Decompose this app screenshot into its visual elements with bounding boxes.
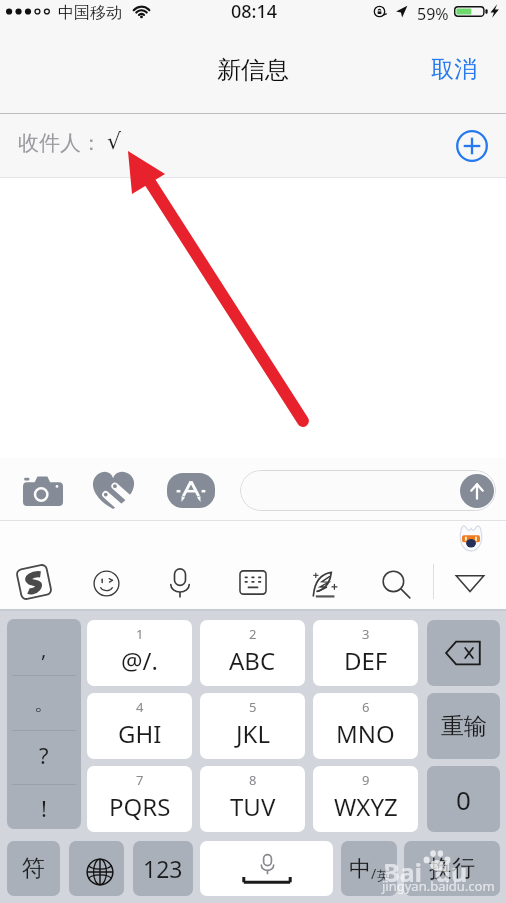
staticText: 2 [249,625,257,643]
staticText: TUV [230,790,276,823]
staticText: 6 [362,698,370,716]
button[interactable]: 0 [427,766,500,832]
staticText: 。 [34,691,54,716]
button[interactable]: Handwriting [309,567,340,599]
staticText: √ [107,129,122,155]
button[interactable]: 2 [200,620,305,686]
staticText: 中国移动 [58,3,122,23]
staticText: 中 [349,855,371,883]
button[interactable]: Add recipient [452,126,492,166]
button[interactable]: 123 [133,841,193,896]
button[interactable]: 9 [313,766,418,832]
button[interactable]: App Store [166,468,215,512]
button[interactable]: Search [381,569,412,600]
button[interactable]: 中 [341,841,397,896]
staticText: 5 [249,698,257,716]
staticText: / [371,864,377,883]
staticText: , [41,636,47,663]
button[interactable]: Digital Touch [88,468,140,512]
staticText: 123 [143,853,183,884]
staticText: PQRS [109,790,171,823]
staticText: 新信息 [217,55,289,85]
staticText: 取消 [431,55,477,84]
staticText: ? [39,740,49,770]
staticText: WXYZ [334,790,398,823]
button[interactable]: Voice input [169,568,191,598]
staticText: 8 [249,771,257,789]
button[interactable]: 5 [200,693,305,759]
button[interactable]: 3 [313,620,418,686]
button[interactable]: 8 [200,766,305,832]
staticText: JKL [236,717,270,750]
staticText: 英 [377,867,390,883]
button[interactable]: 7 [87,766,192,832]
button[interactable]: 4 [87,693,192,759]
button[interactable]: Space [200,841,333,896]
button[interactable]: 重输 [427,693,500,759]
button[interactable]: Delete [427,620,500,686]
button[interactable]: 符 [7,841,60,896]
staticText: jingyan.baidu.com [382,877,495,895]
staticText: @/. [121,644,158,677]
button[interactable]: , [7,619,81,829]
button[interactable]: Sogou input [16,564,52,600]
button[interactable]: Sogou [458,524,484,551]
button[interactable]: Keyboard layout [239,570,267,595]
button[interactable]: 6 [313,693,418,759]
staticText: 08:14 [231,0,278,24]
staticText: 重输 [441,712,487,741]
staticText: 4 [136,698,144,716]
staticText: 59% [417,3,449,25]
button[interactable]: 1 [87,620,192,686]
staticText: Bai du [383,855,468,889]
staticText: ABC [229,644,276,677]
staticText: 收件人： [18,130,102,156]
button[interactable]: 换行 [404,841,500,896]
staticText: ! [41,793,47,823]
staticText: MNO [336,717,395,750]
button[interactable]: Switch language [69,841,124,896]
button[interactable]: 取消 [415,47,506,92]
staticText: GHI [118,717,162,750]
button[interactable]: Emoji [93,570,120,597]
staticText: 7 [136,771,144,789]
staticText: 换行 [429,854,475,883]
button[interactable]: Send [240,470,496,511]
staticText: 9 [362,771,370,789]
button[interactable]: Hide keyboard [455,572,485,594]
staticText: 3 [362,625,370,643]
staticText: 1 [136,625,144,643]
button[interactable]: Send [460,474,494,508]
staticText: 0 [456,782,471,817]
staticText: DEF [344,644,388,677]
button[interactable]: Camera [18,468,67,512]
staticText: 符 [22,854,45,883]
